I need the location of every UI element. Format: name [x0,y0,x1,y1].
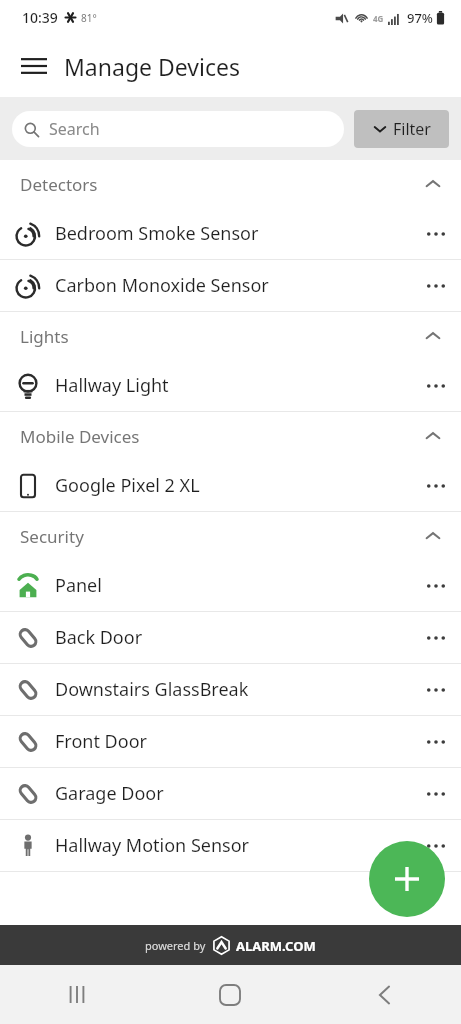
staticText: 81° [81,11,97,25]
button[interactable]: Hallway Motion Sensor [0,820,461,871]
button[interactable]: More options for Downstairs GlassBreak [411,664,461,715]
button[interactable]: More options for Garage Door [411,768,461,819]
button[interactable]: Google Pixel 2 XL [0,460,461,511]
staticText: Bedroom Smoke Sensor [55,221,259,246]
staticText: 10:39 [22,8,58,27]
button[interactable]: Open navigation menu [12,44,56,88]
button[interactable]: Panel [0,560,461,611]
button[interactable]: More options for Panel [411,560,461,611]
staticText: Lights [20,325,69,348]
button[interactable]: Back [307,965,461,1024]
staticText: Search [49,118,100,140]
staticText: Google Pixel 2 XL [55,473,200,498]
button[interactable]: Bedroom Smoke Sensor [0,208,461,259]
staticText: Mobile Devices [20,425,140,448]
staticText: Garage Door [55,781,164,806]
staticText: Manage Devices [64,51,240,82]
button[interactable]: Recent apps [0,965,153,1024]
button[interactable]: Carbon Monoxide Sensor [0,260,461,311]
staticText: Back Door [55,625,143,650]
button[interactable]: Search [12,111,344,147]
staticText: 4G [373,13,384,24]
button[interactable]: More options for Hallway Light [411,360,461,411]
button[interactable]: More options for Google Pixel 2 XL [411,460,461,511]
button[interactable]: More options for Bedroom Smoke Sensor [411,208,461,259]
button[interactable]: Downstairs GlassBreak [0,664,461,715]
button[interactable]: Back Door [0,612,461,663]
staticText: Filter [393,118,431,140]
button[interactable]: More options for Front Door [411,716,461,767]
button[interactable]: Detectors [0,160,461,208]
staticText: Downstairs GlassBreak [55,677,249,702]
button[interactable]: More options for Back Door [411,612,461,663]
button[interactable]: Add device [369,841,445,917]
button[interactable]: Front Door [0,716,461,767]
staticText: Hallway Motion Sensor [55,833,249,858]
staticText: Detectors [20,173,98,196]
staticText: Front Door [55,729,147,754]
button[interactable]: More options for Hallway Motion Sensor [411,820,461,871]
button[interactable]: Security [0,512,461,560]
staticText: powered by [145,938,206,953]
staticText: Carbon Monoxide Sensor [55,273,269,298]
staticText: Hallway Light [55,373,169,398]
staticText: Security [20,525,84,548]
button[interactable]: More options for Carbon Monoxide Sensor [411,260,461,311]
button[interactable]: Mobile Devices [0,412,461,460]
button[interactable]: Home [153,965,307,1024]
staticText: ALARM.COM [236,937,316,955]
button[interactable]: Garage Door [0,768,461,819]
button[interactable]: Hallway Light [0,360,461,411]
staticText: Panel [55,573,102,598]
staticText: 97% [407,9,433,27]
button[interactable]: Lights [0,312,461,360]
button[interactable]: Filter [354,110,449,148]
